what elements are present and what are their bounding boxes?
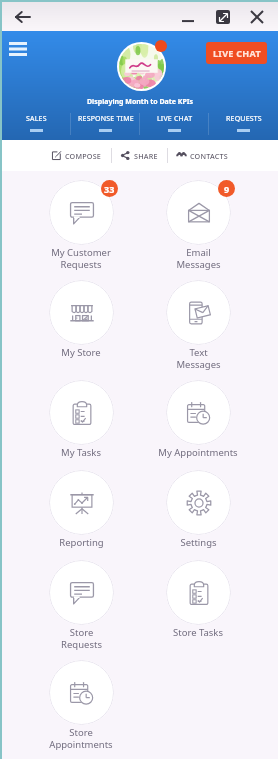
button[interactable]: LIVE CHAT	[206, 42, 267, 64]
button[interactable]: Store Requests	[44, 560, 118, 660]
button[interactable]: COMPOSE	[43, 140, 111, 171]
button[interactable]: My Appointments	[158, 380, 238, 470]
staticText: CONTACTS	[190, 151, 228, 161]
button[interactable]: Minimize	[170, 2, 206, 31]
button[interactable]: SHARE	[112, 140, 167, 171]
staticText: Reporting	[59, 536, 104, 549]
staticText: SHARE	[134, 151, 158, 161]
button[interactable]: Close	[240, 2, 273, 31]
button[interactable]: LIVE CHAT	[140, 108, 209, 140]
staticText: LIVE CHAT	[157, 114, 193, 124]
button[interactable]: Maximize	[206, 2, 240, 31]
staticText: My Appointments	[158, 446, 238, 459]
staticText: Settings	[180, 536, 217, 549]
button[interactable]: SALES	[2, 108, 71, 140]
button[interactable]: Company logo	[119, 44, 164, 89]
staticText: Store Tasks	[173, 626, 223, 639]
button[interactable]: 9	[161, 180, 235, 280]
button[interactable]: 33	[44, 180, 118, 280]
staticText: Store Requests	[61, 626, 102, 651]
staticText: 33	[104, 183, 115, 195]
staticText: Store Appointments	[49, 726, 113, 751]
staticText: Email Messages	[176, 246, 221, 271]
button[interactable]: My Store	[44, 280, 118, 380]
staticText: Text Messages	[176, 346, 221, 371]
staticText: Displaying Month to Date KPIs	[87, 97, 194, 107]
button[interactable]: Reporting	[44, 470, 118, 560]
button[interactable]: RESPONSE TIME	[71, 108, 140, 140]
staticText: REQUESTS	[226, 114, 262, 124]
staticText: My Tasks	[61, 446, 101, 459]
staticText: SALES	[26, 114, 47, 124]
staticText: LIVE CHAT	[213, 47, 261, 59]
button[interactable]: Back	[6, 2, 38, 31]
staticText: My Customer Requests	[51, 246, 111, 271]
button[interactable]: Store Tasks	[161, 560, 235, 660]
button[interactable]: Menu	[3, 34, 33, 64]
button[interactable]: Store Appointments	[44, 660, 118, 759]
staticText: 9	[224, 183, 230, 195]
button[interactable]: Text Messages	[161, 280, 235, 380]
button[interactable]: My Tasks	[44, 380, 118, 470]
button[interactable]: REQUESTS	[209, 108, 278, 140]
button[interactable]: CONTACTS	[168, 140, 237, 171]
button[interactable]: Settings	[161, 470, 235, 560]
staticText: My Store	[61, 346, 101, 359]
staticText: RESPONSE TIME	[78, 114, 134, 124]
staticText: COMPOSE	[65, 151, 102, 161]
